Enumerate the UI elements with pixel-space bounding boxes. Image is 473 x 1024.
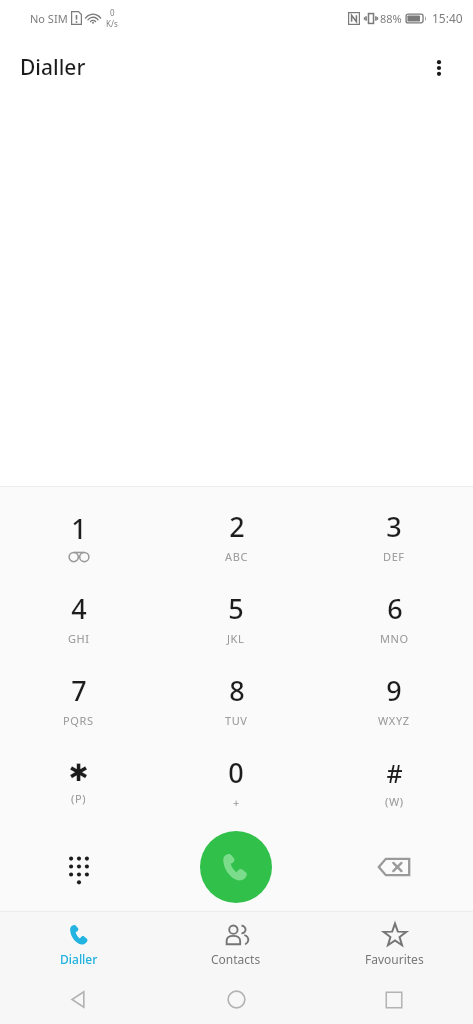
staticText: GHI — [68, 631, 90, 646]
staticText: ✱ — [68, 759, 89, 787]
button[interactable]: 5 — [157, 577, 315, 659]
staticText: Favourites — [365, 951, 424, 967]
staticText: 15:40 — [432, 10, 463, 26]
staticText: 1 — [71, 510, 87, 547]
staticText: ABC — [225, 549, 248, 564]
staticText: 2 — [229, 508, 245, 545]
button[interactable]: More options — [415, 44, 463, 92]
staticText: # — [386, 756, 403, 790]
staticText: (W) — [385, 794, 404, 809]
button[interactable]: 8 — [157, 659, 315, 741]
button[interactable]: 2 — [157, 495, 315, 577]
staticText: Contacts — [211, 951, 261, 967]
staticText: 8 — [229, 672, 245, 709]
button[interactable]: # — [315, 741, 473, 823]
button[interactable]: ✱ — [0, 741, 157, 823]
button[interactable]: 1 — [0, 495, 157, 577]
staticText: JKL — [227, 631, 245, 646]
button[interactable]: Keypad — [0, 823, 157, 911]
staticText: Dialler — [20, 53, 86, 82]
staticText: 4 — [71, 590, 87, 627]
staticText: MNO — [380, 631, 409, 646]
staticText: No SIM — [30, 11, 68, 26]
button[interactable]: Call — [200, 831, 272, 903]
staticText: 7 — [71, 672, 87, 709]
button[interactable]: Contacts — [157, 912, 315, 975]
staticText: DEF — [383, 549, 405, 564]
staticText: 9 — [386, 672, 402, 709]
button[interactable]: Dialler — [0, 912, 157, 975]
button[interactable]: Delete — [315, 823, 473, 911]
staticText: PQRS — [63, 713, 94, 728]
staticText: 88% — [380, 11, 402, 26]
staticText: 5 — [228, 590, 244, 627]
staticText: 0 — [228, 754, 244, 791]
button[interactable]: Recents — [315, 975, 473, 1024]
button[interactable]: 3 — [315, 495, 473, 577]
staticText: WXYZ — [378, 713, 410, 728]
button[interactable]: Favourites — [315, 912, 473, 975]
button[interactable]: Home — [157, 975, 315, 1024]
button[interactable]: 4 — [0, 577, 157, 659]
button[interactable]: 0 — [157, 741, 315, 823]
staticText: 6 — [387, 590, 403, 627]
button[interactable]: 7 — [0, 659, 157, 741]
staticText: 0 — [110, 7, 115, 18]
button[interactable]: Back — [0, 975, 157, 1024]
staticText: K/s — [106, 18, 118, 29]
button[interactable]: 6 — [315, 577, 473, 659]
staticText: + — [233, 795, 240, 810]
staticText: 3 — [386, 508, 402, 545]
staticText: (P) — [71, 791, 87, 806]
button[interactable]: 9 — [315, 659, 473, 741]
staticText: Dialler — [60, 951, 98, 967]
staticText: TUV — [225, 713, 248, 728]
